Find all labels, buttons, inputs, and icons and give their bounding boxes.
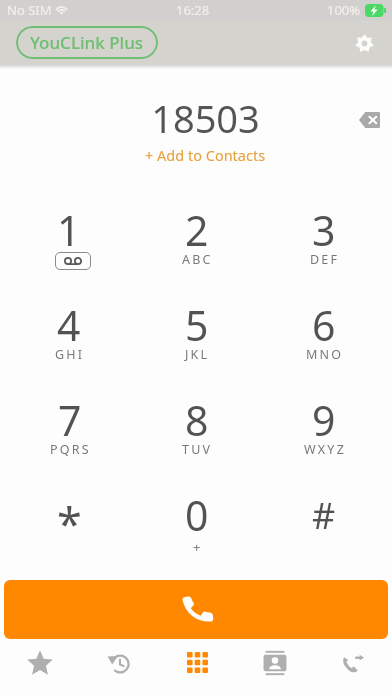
button[interactable]: 3 — [260, 200, 387, 295]
staticText: No SIM — [7, 1, 52, 19]
staticText: 1 — [57, 202, 81, 258]
staticText: YouCLink Plus — [30, 31, 144, 54]
staticText: * — [57, 493, 82, 554]
staticText: 7 — [58, 392, 82, 448]
staticText: 100% — [327, 1, 361, 19]
staticText: 4 — [57, 297, 81, 353]
button[interactable]: Call — [4, 580, 388, 639]
staticText: 16:28 — [176, 1, 210, 19]
button[interactable]: Contacts — [236, 639, 314, 696]
staticText: 0 — [185, 487, 209, 543]
staticText: MNO — [306, 346, 344, 363]
staticText: ABC — [182, 251, 213, 268]
button[interactable]: Dialpad — [158, 639, 236, 696]
staticText: 6 — [312, 297, 336, 353]
staticText: WXYZ — [304, 441, 346, 458]
staticText: JKL — [185, 346, 210, 363]
button[interactable]: 2 — [133, 200, 260, 295]
button[interactable]: Favorites — [0, 639, 79, 696]
button[interactable]: # — [260, 485, 387, 580]
button[interactable]: + Add to Contacts — [137, 143, 274, 167]
button[interactable]: YouCLink Plus — [16, 26, 158, 59]
staticText: 5 — [185, 297, 209, 353]
button[interactable]: 5 — [133, 295, 260, 390]
staticText: # — [312, 491, 336, 540]
button[interactable]: 4 — [5, 295, 133, 390]
button[interactable]: 7 — [5, 390, 133, 485]
button[interactable]: Call history — [79, 639, 158, 696]
button[interactable]: 0 — [133, 485, 260, 580]
button[interactable]: Add call — [314, 639, 392, 696]
staticText: GHI — [55, 346, 85, 363]
button[interactable]: Backspace — [352, 103, 386, 137]
staticText: 3 — [312, 202, 336, 258]
staticText: PQRS — [50, 441, 91, 458]
staticText: 9 — [312, 392, 336, 448]
button[interactable]: Settings — [347, 26, 381, 60]
button[interactable]: 8 — [133, 390, 260, 485]
button[interactable]: 6 — [260, 295, 387, 390]
staticText: 18503 — [151, 92, 260, 144]
staticText: 8 — [185, 392, 209, 448]
button[interactable]: 9 — [260, 390, 387, 485]
staticText: + — [193, 538, 201, 556]
staticText: 2 — [185, 202, 209, 258]
staticText: TUV — [182, 441, 213, 458]
staticText: + Add to Contacts — [145, 145, 266, 165]
button[interactable]: 1 — [5, 200, 133, 295]
staticText: DEF — [310, 251, 340, 268]
button[interactable]: * — [5, 485, 133, 580]
